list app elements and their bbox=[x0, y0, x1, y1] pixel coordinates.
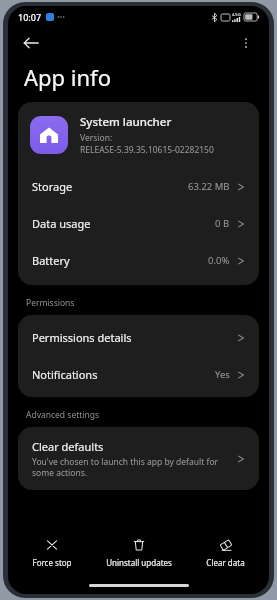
staticText: Version: bbox=[80, 132, 113, 144]
staticText: Force stop bbox=[32, 557, 72, 568]
staticText: 63.22 MB bbox=[188, 180, 230, 193]
staticText: Clear data bbox=[206, 557, 245, 568]
button[interactable]: Clear defaults bbox=[18, 427, 259, 490]
button[interactable]: Back bbox=[16, 28, 46, 58]
button[interactable]: Uninstall updates bbox=[95, 530, 182, 576]
staticText: 4.5G bbox=[232, 12, 241, 17]
staticText: You've chosen to launch this app by defa… bbox=[32, 456, 229, 478]
staticText: Notifications bbox=[32, 367, 98, 382]
staticText: Data usage bbox=[32, 216, 91, 231]
button[interactable]: Battery bbox=[18, 242, 259, 279]
staticText: 10:07 bbox=[18, 11, 42, 23]
button[interactable]: Storage bbox=[18, 168, 259, 205]
staticText: Permissions bbox=[26, 297, 75, 309]
staticText: Storage bbox=[32, 179, 73, 194]
button[interactable]: Data usage bbox=[18, 205, 259, 242]
button[interactable]: Force stop bbox=[8, 530, 95, 576]
staticText: Uninstall updates bbox=[106, 557, 172, 568]
staticText: 0.0% bbox=[208, 254, 230, 267]
staticText: Battery bbox=[32, 253, 70, 268]
staticText: Clear defaults bbox=[32, 439, 104, 454]
staticText: App info bbox=[24, 62, 111, 92]
button[interactable]: Notifications bbox=[18, 356, 259, 393]
staticText: RELEASE-5.39.35.10615-02282150 bbox=[80, 144, 214, 156]
staticText: System launcher bbox=[80, 114, 172, 130]
button[interactable]: More options bbox=[231, 28, 261, 58]
button[interactable]: Permissions details bbox=[18, 319, 259, 356]
button[interactable]: Clear data bbox=[182, 530, 269, 576]
staticText: Permissions details bbox=[32, 330, 132, 345]
button[interactable]: System launcher bbox=[18, 102, 259, 168]
staticText: Advanced settings bbox=[26, 409, 100, 421]
staticText: Yes bbox=[215, 368, 230, 381]
staticText: 0 B bbox=[215, 217, 230, 230]
